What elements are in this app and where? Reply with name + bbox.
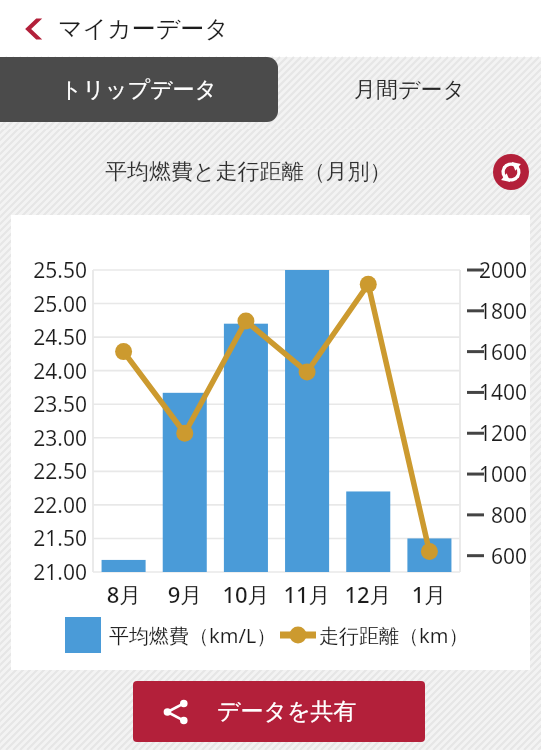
- staticText: 25.00: [11, 290, 87, 319]
- staticText: 9月: [151, 579, 219, 609]
- staticText: 1200: [467, 419, 527, 448]
- button[interactable]: Back: [12, 6, 58, 52]
- staticText: 23.00: [11, 424, 87, 453]
- staticText: 25.50: [11, 256, 87, 285]
- staticText: 24.00: [11, 357, 87, 386]
- staticText: 21.00: [11, 558, 87, 587]
- staticText: マイカーデータ: [58, 14, 229, 44]
- staticText: 22.00: [11, 491, 87, 520]
- staticText: 走行距離（km）: [319, 622, 469, 649]
- staticText: 22.50: [11, 457, 87, 486]
- staticText: 8月: [90, 579, 158, 609]
- button[interactable]: データを共有: [133, 681, 425, 742]
- staticText: 12月: [334, 579, 402, 609]
- staticText: 1月: [395, 579, 463, 609]
- staticText: 1600: [467, 338, 527, 367]
- staticText: 1400: [467, 378, 527, 407]
- staticText: 24.50: [11, 323, 87, 352]
- staticText: 月間データ: [354, 76, 466, 104]
- button[interactable]: Refresh: [491, 152, 531, 192]
- staticText: 23.50: [11, 390, 87, 419]
- staticText: 600: [467, 542, 527, 571]
- staticText: トリップデータ: [60, 76, 218, 104]
- staticText: 10月: [212, 579, 280, 609]
- staticText: 平均燃費と走行距離（月別）: [105, 158, 392, 186]
- staticText: 平均燃費（km/L）: [109, 622, 277, 649]
- staticText: 800: [467, 501, 527, 530]
- button[interactable]: 月間データ: [278, 57, 541, 122]
- staticText: 21.50: [11, 524, 87, 553]
- staticText: データを共有: [217, 697, 357, 726]
- staticText: 1000: [467, 460, 527, 489]
- staticText: 2000: [467, 256, 527, 285]
- staticText: 11月: [273, 579, 341, 609]
- staticText: 1800: [467, 297, 527, 326]
- button[interactable]: トリップデータ: [0, 57, 278, 122]
